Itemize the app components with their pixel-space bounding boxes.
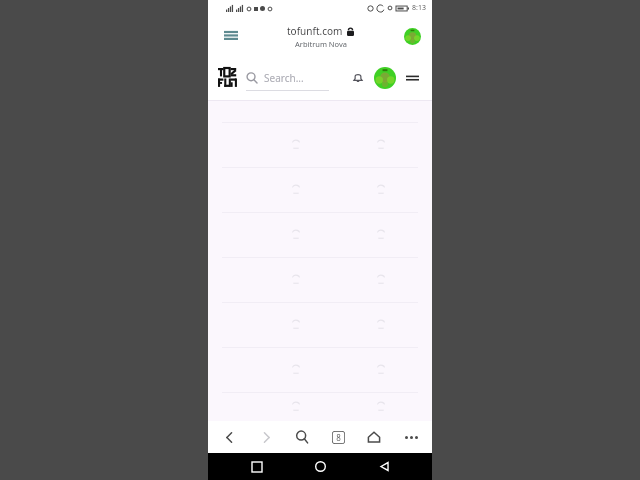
button[interactable]: tofuNFT home — [217, 67, 237, 89]
button[interactable]: Notifications — [347, 67, 369, 89]
button[interactable]: Profile — [401, 25, 423, 47]
staticText: Arbitrum Nova — [295, 39, 347, 49]
button[interactable]: Back — [214, 422, 244, 452]
button[interactable]: Menu — [218, 23, 244, 49]
button[interactable]: More options — [396, 422, 426, 452]
staticText: 8 — [336, 432, 341, 443]
button[interactable]: Forward — [251, 422, 281, 452]
button[interactable]: Tabs: 8 — [323, 422, 353, 452]
button[interactable]: Home — [305, 453, 335, 480]
staticText: 8:13 — [412, 3, 426, 13]
button[interactable]: Recent apps — [242, 453, 272, 480]
button[interactable]: Home — [359, 422, 389, 452]
button[interactable]: Search... — [246, 65, 343, 91]
staticText: tofunft.com — [287, 24, 343, 38]
button[interactable]: Search — [287, 422, 317, 452]
button[interactable]: tofunft.com — [287, 24, 354, 49]
button[interactable]: Account — [372, 65, 398, 91]
button[interactable]: More menu — [401, 67, 423, 89]
button[interactable]: Back — [369, 453, 399, 480]
staticText: Search... — [264, 71, 304, 85]
